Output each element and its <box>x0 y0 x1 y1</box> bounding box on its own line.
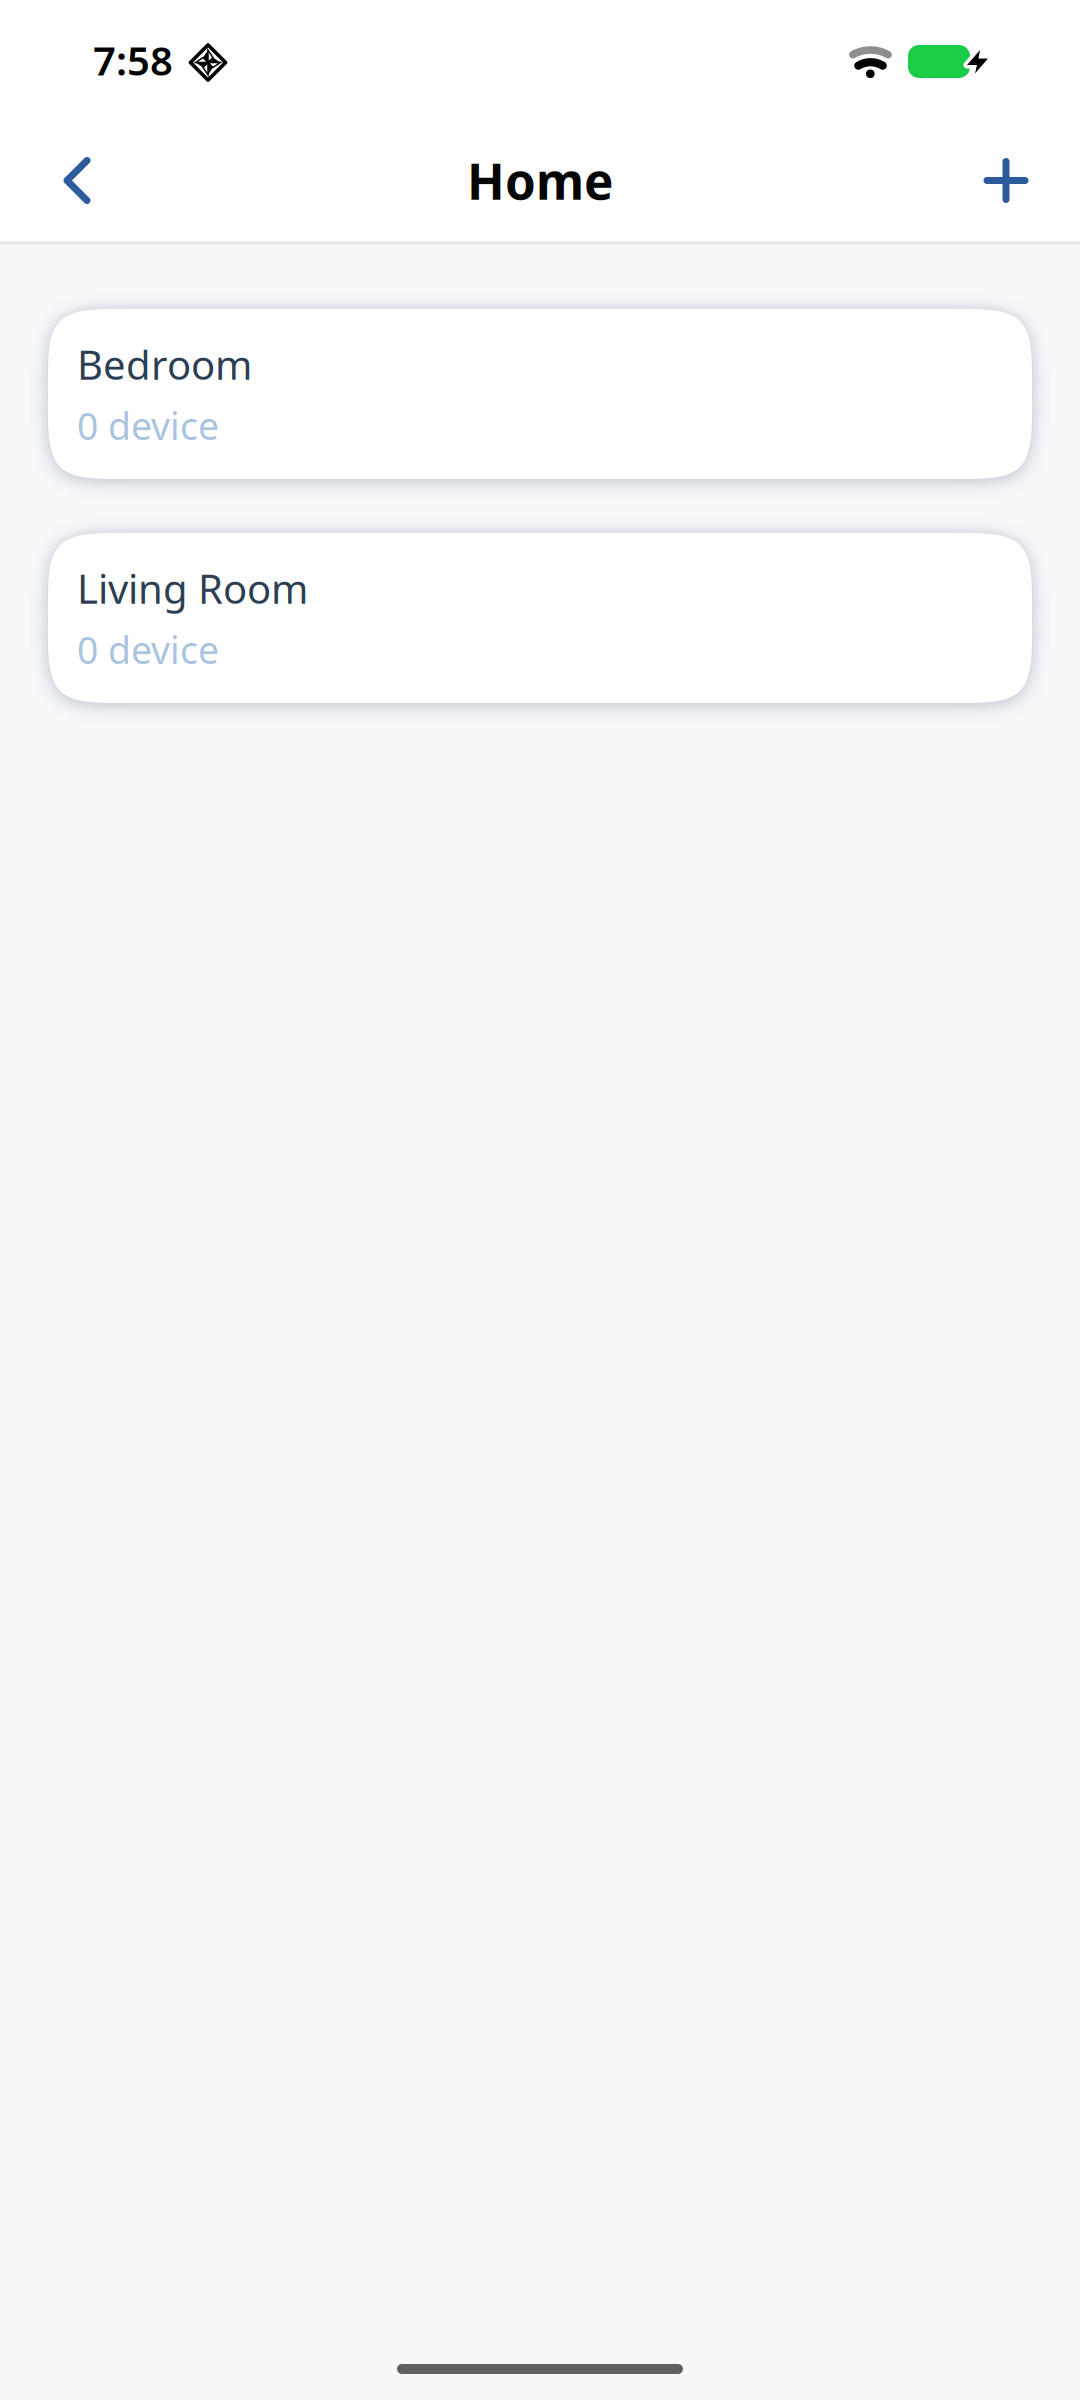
button[interactable]: Bedroom <box>48 309 1032 479</box>
button[interactable]: Living Room <box>48 533 1032 703</box>
staticText: Living Room <box>77 562 308 615</box>
staticText: 0 device <box>77 625 219 674</box>
staticText: 0 device <box>77 401 219 450</box>
button[interactable]: Add room <box>944 130 1080 230</box>
button[interactable]: Back <box>0 130 130 230</box>
staticText: 7:58 <box>93 33 173 86</box>
staticText: Home <box>467 148 613 213</box>
staticText: Bedroom <box>77 338 252 391</box>
